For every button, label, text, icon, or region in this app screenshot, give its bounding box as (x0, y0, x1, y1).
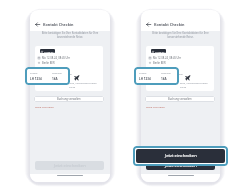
button[interactable]: Back (30, 10, 110, 31)
staticText: Bitte bestätigen Sie Ihre Kontaktdaten f… (145, 31, 216, 39)
button[interactable]: Jetzt einchecken (35, 161, 104, 170)
button[interactable]: Reise stornieren (35, 105, 55, 108)
staticText: Buchung verwalten (57, 97, 81, 101)
staticText: Jetzt einchecken (165, 153, 197, 159)
staticText: Buchung verwalten (168, 97, 192, 101)
button[interactable]: Back (141, 10, 220, 31)
other: Back (35, 22, 40, 27)
staticText: Berlin BER (42, 61, 55, 65)
staticText: Jetzt einchecken (54, 163, 86, 169)
staticText: Mo 12.08.24, 08:45 Uhr (153, 56, 182, 60)
staticText: Bitte, Ankunftszeit prüfen vorab (69, 82, 97, 88)
other: Flight (185, 75, 191, 81)
staticText: 12.08.24 (155, 50, 165, 53)
button[interactable]: Jetzt einchecken (146, 161, 215, 170)
button[interactable]: Buchung verwalten (34, 96, 104, 102)
staticText: Mo 12.08.24, 08:45 Uhr (42, 56, 71, 60)
staticText: Sitzplatz (52, 71, 62, 74)
staticText: 12.08.24 (44, 50, 54, 53)
staticText: LH 1234 (151, 78, 163, 82)
staticText: LH 1234 (30, 77, 42, 81)
staticText: Bitte, Ankunftszeit prüfen vorab (180, 82, 208, 88)
staticText: Sitzplatz (62, 72, 72, 75)
other: Flight (74, 75, 80, 81)
staticText: LH 1234 (139, 77, 151, 81)
staticText: Sitzplatz (173, 72, 183, 75)
staticText: LH 1234 (40, 78, 52, 82)
button[interactable]: Buchung verwalten (145, 96, 215, 102)
staticText: 14A (52, 77, 58, 81)
staticText: Sitzplatz (161, 71, 171, 74)
staticText: Berlin BER (153, 61, 166, 65)
staticText: Bitte bestätigen Sie Ihre Kontaktdaten f… (34, 31, 106, 39)
staticText: Kontakt Checkin (43, 22, 74, 27)
staticText: Kontakt Checkin (154, 22, 185, 27)
staticText: 14A (161, 77, 167, 81)
staticText: 14A (173, 78, 179, 82)
button[interactable]: Reise stornieren (146, 105, 166, 108)
staticText: Flugnr. (139, 71, 147, 74)
button[interactable]: Jetzt einchecken (136, 149, 225, 163)
other: Back (146, 22, 151, 27)
staticText: Flugnr. (30, 71, 38, 74)
staticText: Jetzt einchecken (165, 163, 197, 169)
